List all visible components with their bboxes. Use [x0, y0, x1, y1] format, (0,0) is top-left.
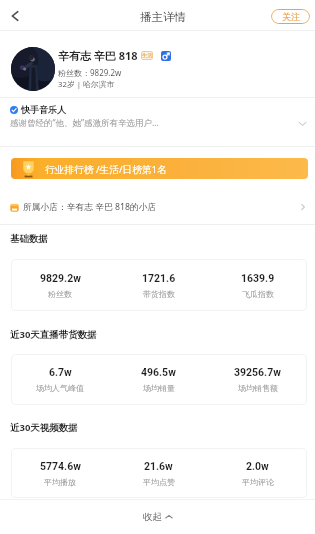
staticText: 1721.6	[142, 272, 176, 284]
button[interactable]: Expand	[296, 117, 308, 129]
button[interactable]: Avatar	[11, 47, 55, 91]
staticText: 9829.2w	[40, 272, 81, 284]
staticText: 基础数据	[10, 233, 48, 245]
staticText: 2.0w	[246, 460, 269, 472]
staticText: 平均点赞	[143, 477, 175, 487]
staticText: 感谢曾经的“他、她”感激所有辛选用户…	[10, 117, 296, 129]
staticText: 39256.7w	[234, 366, 281, 378]
staticText: 快手音乐人	[21, 104, 66, 115]
staticText: 所属小店：辛有志 辛巴 818的小店	[23, 201, 299, 213]
staticText: 行业排行榜 /生活/日榜第1名	[45, 163, 167, 176]
staticText: 496.5w	[141, 366, 176, 378]
button[interactable]: 收起	[0, 500, 315, 534]
staticText: 粉丝数：9829.2w	[58, 67, 122, 78]
staticText: 近30天直播带货数据	[10, 328, 97, 341]
button[interactable]: Back	[2, 3, 27, 28]
staticText: 辛有志 辛巴 818	[58, 48, 138, 63]
staticText: 关注	[282, 11, 300, 22]
staticText: 近30天视频数据	[10, 421, 78, 434]
staticText: 场均人气峰值	[36, 383, 84, 393]
staticText: 平均播放	[44, 477, 76, 487]
staticText: 生活	[142, 52, 153, 59]
staticText: 场均销量	[143, 383, 175, 393]
staticText: 收起	[143, 511, 162, 523]
staticText: 32岁 | 哈尔滨市	[58, 79, 115, 90]
staticText: 1639.9	[241, 272, 275, 284]
button[interactable]: 关注	[271, 9, 310, 24]
button[interactable]: 行业排行榜 /生活/日榜第1名	[11, 158, 308, 179]
staticText: 播主详情	[140, 10, 186, 24]
staticText: 飞瓜指数	[242, 289, 274, 299]
staticText: 场均销售额	[238, 383, 278, 393]
button[interactable]: 所属小店：辛有志 辛巴 818的小店	[10, 197, 307, 217]
staticText: 21.6w	[144, 460, 173, 472]
staticText: 平均评论	[242, 477, 274, 487]
staticText: 带货指数	[143, 289, 175, 299]
staticText: 5774.6w	[40, 460, 81, 472]
staticText: 粉丝数	[48, 289, 72, 299]
staticText: 6.7w	[49, 366, 72, 378]
